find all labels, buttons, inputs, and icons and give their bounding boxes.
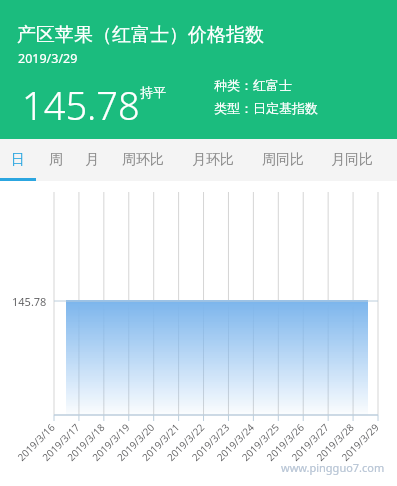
staticText: 周同比 — [262, 151, 304, 169]
staticText: 种类：红富士 — [214, 77, 292, 93]
button[interactable]: 月 — [76, 139, 108, 181]
button[interactable]: 月同比 — [323, 139, 381, 181]
staticText: 月 — [85, 151, 99, 169]
staticText: 145.78 — [22, 79, 140, 131]
button[interactable]: 周环比 — [114, 139, 172, 181]
staticText: 月同比 — [331, 151, 373, 169]
staticText: 周环比 — [122, 151, 164, 169]
staticText: 产区苹果（红富士）价格指数 — [17, 23, 264, 47]
button[interactable]: 日 — [0, 139, 36, 181]
staticText: 2019/3/29 — [18, 50, 78, 67]
staticText: 月环比 — [192, 151, 234, 169]
button[interactable]: 月环比 — [184, 139, 242, 181]
button[interactable]: 周 — [40, 139, 72, 181]
staticText: 日 — [11, 151, 25, 169]
staticText: 类型：日定基指数 — [214, 100, 318, 116]
staticText: 周 — [49, 151, 63, 169]
button[interactable]: 周同比 — [254, 139, 312, 181]
staticText: 持平 — [140, 84, 166, 100]
